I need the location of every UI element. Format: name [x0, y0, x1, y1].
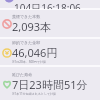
- button[interactable]: Life extended: [0, 67, 100, 100]
- other: Life extended: [2, 79, 12, 89]
- staticText: ※1日20本、500円で計算: [12, 60, 46, 64]
- staticText: 46,046円: [12, 45, 58, 60]
- other: No smoking: [2, 19, 12, 29]
- staticText: ※1本11分短縮されるとして計算: [12, 92, 57, 96]
- other: Money saved: [2, 48, 12, 58]
- button[interactable]: No smoking: [0, 10, 100, 37]
- staticText: 禁煙できた本数: [12, 14, 41, 19]
- staticText: 節約できた金額: [12, 40, 41, 45]
- staticText: 2,093本: [12, 19, 52, 34]
- button[interactable]: Elapsed time: [0, 0, 100, 8]
- staticText: 104日16:18:06: [14, 1, 81, 9]
- staticText: 延びた寿命: [12, 72, 33, 77]
- staticText: 7日23時間51分: [12, 77, 88, 92]
- button[interactable]: Money saved: [0, 39, 100, 65]
